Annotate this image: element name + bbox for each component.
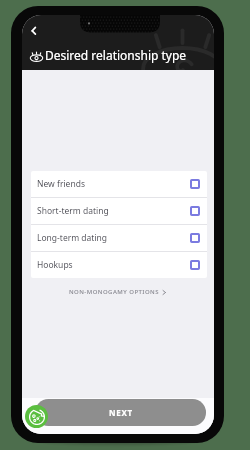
button[interactable]: Long-term dating — [31, 225, 207, 251]
staticText: NON-MONOGAMY OPTIONS — [69, 288, 159, 296]
button[interactable]: Hookups — [31, 252, 207, 278]
button[interactable]: NON-MONOGAMY OPTIONS — [22, 284, 214, 300]
button[interactable]: Short-term dating — [31, 198, 207, 224]
button[interactable]: Cookie settings — [25, 405, 48, 428]
staticText: New friends — [37, 178, 85, 190]
button[interactable]: NEXT — [35, 399, 206, 426]
staticText: Short-term dating — [37, 205, 109, 217]
staticText: NEXT — [109, 407, 133, 418]
staticText: Long-term dating — [37, 232, 108, 244]
button[interactable]: New friends — [31, 171, 207, 197]
staticText: Hookups — [37, 259, 73, 271]
staticText: Desired relationship type — [45, 47, 187, 63]
button[interactable]: Back — [25, 20, 45, 40]
